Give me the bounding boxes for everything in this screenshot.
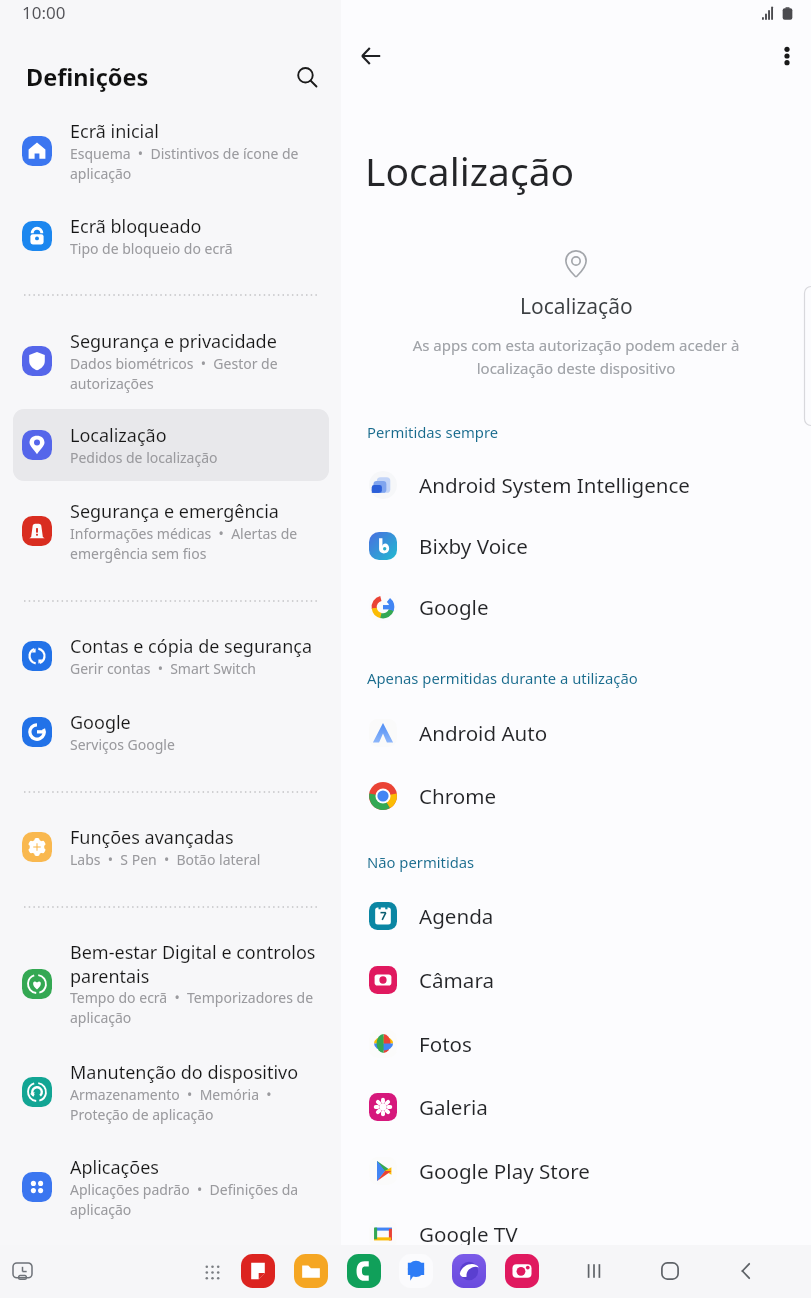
button[interactable]: CAMERA <box>501 1250 543 1292</box>
button[interactable]: Home <box>645 1246 695 1296</box>
staticText: Armazenamento • Memória • Proteção de ap… <box>70 1085 320 1125</box>
staticText: Bixby Voice <box>419 532 528 560</box>
staticText: Bem-estar Digital e controlos parentais <box>70 940 320 988</box>
button[interactable]: Permitidas sempre <box>367 422 499 442</box>
button[interactable]: Android System Intelligence <box>341 454 811 516</box>
button[interactable] <box>13 1151 329 1223</box>
staticText: Chrome <box>419 782 497 810</box>
button[interactable] <box>13 200 329 272</box>
button[interactable]: Show taskbar <box>2 1252 42 1292</box>
button[interactable]: Back <box>349 34 393 78</box>
button[interactable]: Não permitidas <box>367 852 475 872</box>
staticText: Galeria <box>419 1093 488 1121</box>
button[interactable]: Câmara <box>341 949 811 1011</box>
staticText: Câmara <box>419 966 495 994</box>
button[interactable]: Bixby Voice <box>341 515 811 577</box>
staticText: Esquema • Distintivos de ícone de aplica… <box>70 144 320 184</box>
button[interactable]: Google Play Store <box>341 1140 811 1202</box>
staticText: Gerir contas • Smart Switch <box>70 659 257 678</box>
staticText: Localização <box>70 423 167 448</box>
staticText: Localização <box>520 292 633 321</box>
staticText: Tipo de bloqueio do ecrã <box>70 239 233 258</box>
button[interactable] <box>13 115 329 187</box>
button[interactable]: Android Auto <box>341 702 811 764</box>
button[interactable]: Google TV <box>341 1203 811 1265</box>
staticText: Localização <box>365 144 575 197</box>
staticText: Funções avançadas <box>70 825 234 850</box>
staticText: Segurança e emergência <box>70 499 279 524</box>
button[interactable] <box>13 620 329 692</box>
button[interactable]: Apenas permitidas durante a utilização <box>367 668 638 688</box>
button[interactable]: Google <box>341 576 811 638</box>
staticText: Google Play Store <box>419 1157 590 1185</box>
staticText: Fotos <box>419 1030 472 1058</box>
button[interactable]: Agenda <box>341 885 811 947</box>
button[interactable]: Search <box>287 57 327 97</box>
button[interactable] <box>13 409 329 481</box>
button[interactable]: Recents <box>569 1246 619 1296</box>
button[interactable]: Fotos <box>341 1013 811 1075</box>
button[interactable]: Galeria <box>341 1076 811 1138</box>
button[interactable]: NOTES <box>237 1250 279 1292</box>
button[interactable]: More options <box>765 34 809 78</box>
button[interactable] <box>13 495 329 567</box>
staticText: Aplicações <box>70 1155 159 1180</box>
staticText: Labs • S Pen • Botão lateral <box>70 850 261 869</box>
button[interactable]: Chrome <box>341 765 811 827</box>
button[interactable] <box>13 325 329 397</box>
staticText: Contas e cópia de segurança <box>70 634 313 659</box>
button[interactable]: FILES <box>290 1250 332 1292</box>
staticText: Google <box>70 710 131 735</box>
staticText: Manutenção do dispositivo <box>70 1060 299 1085</box>
staticText: Informações médicas • Alertas de emergên… <box>70 524 320 564</box>
staticText: Tempo do ecrã • Temporizadores de aplica… <box>70 988 320 1028</box>
button[interactable] <box>13 696 329 768</box>
staticText: Pedidos de localização <box>70 448 218 467</box>
button[interactable] <box>13 811 329 883</box>
staticText: Aplicações padrão • Definições da aplica… <box>70 1180 320 1220</box>
button[interactable]: Back <box>721 1246 771 1296</box>
staticText: Serviços Google <box>70 735 175 754</box>
staticText: Ecrã inicial <box>70 119 159 144</box>
staticText: Definições <box>26 61 149 93</box>
staticText: As apps com esta autorização podem acede… <box>408 335 744 378</box>
staticText: Google TV <box>419 1220 518 1248</box>
staticText: Google <box>419 593 489 621</box>
button[interactable]: All apps <box>198 1258 226 1286</box>
staticText: 10:00 <box>22 1 66 24</box>
button[interactable]: INTERNET <box>448 1250 490 1292</box>
button[interactable] <box>13 1056 329 1128</box>
button[interactable]: PHONE <box>343 1250 385 1292</box>
button[interactable]: MESSAGES <box>395 1250 437 1292</box>
staticText: Dados biométricos • Gestor de autorizaçõ… <box>70 354 320 394</box>
staticText: Agenda <box>419 902 494 930</box>
staticText: Android Auto <box>419 719 548 747</box>
staticText: Android System Intelligence <box>419 471 690 499</box>
button[interactable] <box>13 936 329 1032</box>
staticText: Segurança e privacidade <box>70 329 277 354</box>
staticText: Ecrã bloqueado <box>70 214 202 239</box>
